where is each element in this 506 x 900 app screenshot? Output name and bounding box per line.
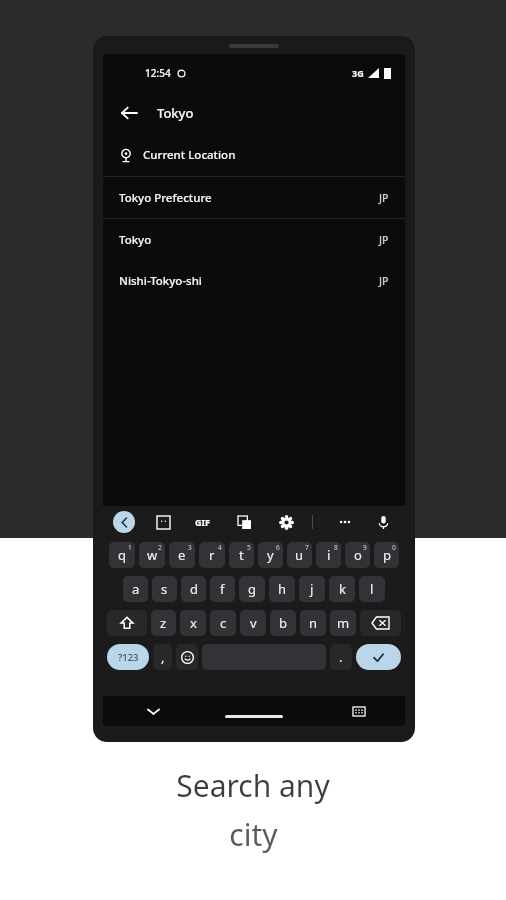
staticText: 6 [276,543,280,552]
button[interactable]: n [300,610,326,636]
staticText: t [239,546,244,564]
staticText: z [160,614,167,632]
button[interactable]: Settings [276,512,296,532]
staticText: 12:54 [145,66,171,80]
button[interactable]: l [359,576,385,602]
button[interactable]: Nishi-Tokyo-shi [103,260,405,301]
button[interactable]: j [299,576,325,602]
staticText: JP [379,274,389,288]
staticText: q [118,546,126,564]
staticText: j [310,580,314,598]
staticText: s [161,580,168,598]
button[interactable]: Stickers [153,512,173,532]
staticText: 3G [352,67,364,79]
staticText: 2 [158,543,162,552]
button[interactable]: Change keyboard [349,701,369,721]
button[interactable]: r [199,542,225,568]
staticText: 9 [363,543,367,552]
button[interactable]: u [287,542,312,568]
button[interactable]: q [109,542,135,568]
staticText: JP [379,233,389,247]
button[interactable]: Shift [107,610,147,636]
button[interactable]: z [151,610,176,636]
staticText: f [220,580,225,598]
staticText: GIF [195,516,210,528]
button[interactable]: . [330,644,352,670]
button[interactable]: v [240,610,266,636]
staticText: JP [379,191,389,205]
button[interactable]: e [169,542,195,568]
button[interactable]: Hide keyboard [143,701,163,721]
button[interactable]: b [270,610,296,636]
button[interactable]: Enter [356,644,401,670]
staticText: Tokyo Prefecture [119,190,212,206]
staticText: , [161,648,165,666]
button[interactable]: f [210,576,235,602]
button[interactable]: s [152,576,177,602]
button[interactable]: a [123,576,148,602]
staticText: h [278,580,287,598]
button[interactable]: d [181,576,206,602]
staticText: 7 [305,543,309,552]
button[interactable]: m [330,610,356,636]
button[interactable]: Backspace [360,610,401,636]
button[interactable]: o [345,542,370,568]
button[interactable]: Voice input [373,512,393,532]
staticText: 3 [188,543,192,552]
button[interactable]: Tokyo [103,219,405,260]
button[interactable]: Back [113,97,145,129]
staticText: ?123 [118,651,139,664]
staticText: g [248,580,256,598]
button[interactable]: More [335,512,355,532]
staticText: Current Location [143,147,236,163]
staticText: b [279,614,287,632]
button[interactable]: c [210,610,236,636]
button[interactable]: p [374,542,399,568]
staticText: u [295,546,304,564]
staticText: a [132,580,140,598]
button[interactable]: y [258,542,283,568]
staticText: o [354,546,362,564]
button[interactable]: Emoji [176,644,198,670]
button[interactable]: w [139,542,165,568]
button[interactable]: Translate [234,512,254,532]
button[interactable]: ?123 [107,644,149,670]
staticText: Tokyo [157,104,194,122]
staticText: e [178,546,186,564]
staticText: c [220,614,227,632]
staticText: w [147,546,158,564]
staticText: Nishi-Tokyo-shi [119,273,202,289]
staticText: 4 [218,543,222,552]
button[interactable]: t [229,542,254,568]
staticText: y [267,546,274,564]
staticText: n [309,614,318,632]
staticText: . [339,648,343,666]
staticText: k [339,580,346,598]
button[interactable]: x [180,610,206,636]
button[interactable]: i [316,542,341,568]
staticText: city [229,814,278,855]
staticText: r [209,546,215,564]
staticText: m [337,614,350,632]
staticText: p [383,546,391,564]
staticText: l [370,580,374,598]
staticText: 0 [392,543,396,552]
button[interactable]: Close toolbar [113,511,135,533]
button[interactable]: h [269,576,295,602]
button[interactable]: , [153,644,172,670]
staticText: d [190,580,198,598]
staticText: i [327,546,331,564]
button[interactable]: Tokyo Prefecture [103,177,405,218]
staticText: 8 [334,543,338,552]
staticText: 5 [247,543,251,552]
button[interactable]: k [329,576,355,602]
staticText: 1 [128,543,132,552]
staticText: v [250,614,257,632]
staticText: Search any [176,765,330,806]
button[interactable]: g [239,576,265,602]
staticText: x [190,614,197,632]
button[interactable]: Current Location [103,134,405,176]
staticText: Tokyo [119,232,152,248]
button[interactable]: GIF [195,516,210,528]
